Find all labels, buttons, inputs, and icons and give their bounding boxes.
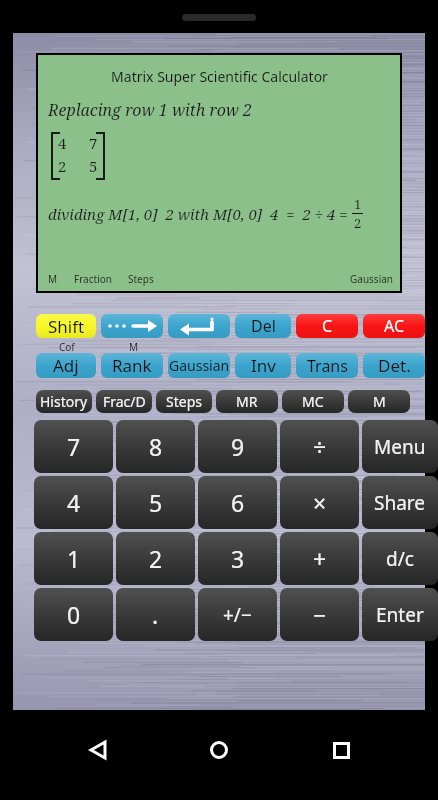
button[interactable]: Steps bbox=[156, 390, 212, 413]
button[interactable]: 2 bbox=[116, 532, 195, 585]
staticText: 6 bbox=[231, 487, 245, 518]
button[interactable]: MR bbox=[216, 390, 278, 413]
staticText: Inv bbox=[251, 354, 276, 377]
button[interactable]: +/− bbox=[198, 588, 277, 641]
staticText: Share bbox=[374, 490, 426, 516]
button[interactable]: 4 bbox=[34, 476, 113, 529]
button[interactable]: Frac/D bbox=[96, 390, 152, 413]
button[interactable]: × bbox=[280, 476, 359, 529]
staticText: Menu bbox=[374, 434, 426, 460]
staticText: Enter bbox=[376, 602, 424, 628]
button[interactable]: + bbox=[280, 532, 359, 585]
button[interactable]: 0 bbox=[34, 588, 113, 641]
staticText: MC bbox=[302, 392, 324, 411]
staticText: . bbox=[152, 599, 159, 630]
button[interactable]: 9 bbox=[198, 420, 277, 473]
staticText: 4 bbox=[67, 487, 81, 518]
button[interactable]: 7 bbox=[34, 420, 113, 473]
staticText: M bbox=[373, 392, 386, 411]
button[interactable]: 6 bbox=[198, 476, 277, 529]
button[interactable]: Back bbox=[74, 726, 122, 774]
button[interactable]: Home bbox=[195, 726, 243, 774]
button[interactable]: 1 bbox=[34, 532, 113, 585]
staticText: ÷ bbox=[313, 431, 327, 462]
button[interactable]: Inv bbox=[235, 353, 291, 378]
staticText: Gaussian bbox=[350, 272, 394, 286]
staticText: M bbox=[48, 272, 58, 286]
staticText: dividing M[1, 0] 2 with M[0, 0] 4 = 2 ÷ … bbox=[48, 204, 352, 224]
button[interactable]: Recent apps bbox=[317, 726, 365, 774]
button[interactable]: . bbox=[116, 588, 195, 641]
button[interactable] bbox=[101, 314, 163, 338]
button[interactable]: Gaussian bbox=[168, 353, 230, 378]
staticText: +/− bbox=[223, 602, 252, 628]
button[interactable]: Shift bbox=[36, 314, 96, 338]
button[interactable]: − bbox=[280, 588, 359, 641]
staticText: Det. bbox=[378, 354, 411, 377]
staticText: 1 bbox=[354, 195, 362, 213]
staticText: 3 bbox=[231, 543, 245, 574]
staticText: 5 bbox=[89, 156, 98, 176]
staticText: Rank bbox=[112, 354, 152, 377]
staticText: 2 bbox=[354, 214, 362, 232]
button[interactable]: History bbox=[36, 390, 92, 413]
button[interactable]: Enter bbox=[362, 588, 438, 641]
button[interactable]: MC bbox=[282, 390, 344, 413]
button[interactable]: Del bbox=[235, 314, 291, 338]
staticText: M bbox=[129, 340, 139, 354]
staticText: + bbox=[313, 543, 327, 574]
staticText: Matrix Super Scientific Calculator bbox=[111, 67, 328, 86]
button[interactable]: ÷ bbox=[280, 420, 359, 473]
staticText: Shift bbox=[48, 315, 85, 338]
staticText: 7 bbox=[89, 133, 98, 153]
button[interactable] bbox=[168, 314, 230, 338]
staticText: 9 bbox=[231, 431, 245, 462]
staticText: AC bbox=[384, 315, 405, 337]
staticText: Trans bbox=[307, 355, 348, 377]
staticText: 8 bbox=[149, 431, 163, 462]
button[interactable]: Adj bbox=[36, 353, 96, 378]
button[interactable]: AC bbox=[363, 314, 425, 338]
staticText: d/c bbox=[386, 546, 414, 572]
staticText: 5 bbox=[149, 487, 163, 518]
staticText: C bbox=[322, 315, 333, 337]
staticText: 0 bbox=[67, 599, 81, 630]
staticText: 7 bbox=[67, 431, 81, 462]
staticText: × bbox=[313, 487, 327, 518]
staticText: − bbox=[313, 599, 327, 630]
staticText: MR bbox=[236, 392, 258, 411]
staticText: Steps bbox=[128, 272, 154, 286]
staticText: Gaussian bbox=[169, 356, 230, 375]
staticText: Replacing row 1 with row 2 bbox=[48, 99, 253, 121]
staticText: Steps bbox=[166, 392, 202, 411]
staticText: Del bbox=[251, 315, 276, 337]
button[interactable]: 5 bbox=[116, 476, 195, 529]
staticText: 2 bbox=[149, 543, 163, 574]
staticText: Cof bbox=[59, 340, 75, 354]
button[interactable]: Menu bbox=[362, 420, 438, 473]
staticText: Fraction bbox=[74, 272, 112, 286]
staticText: History bbox=[40, 392, 88, 411]
staticText: 2 bbox=[58, 156, 67, 176]
button[interactable]: Rank bbox=[101, 353, 163, 378]
button[interactable]: Det. bbox=[363, 353, 425, 378]
button[interactable]: Trans bbox=[296, 353, 358, 378]
button[interactable]: M bbox=[348, 390, 410, 413]
button[interactable]: Share bbox=[362, 476, 438, 529]
button[interactable]: 3 bbox=[198, 532, 277, 585]
staticText: Frac/D bbox=[103, 392, 146, 411]
staticText: 1 bbox=[67, 543, 81, 574]
staticText: 4 bbox=[58, 133, 67, 153]
button[interactable]: 8 bbox=[116, 420, 195, 473]
button[interactable]: d/c bbox=[362, 532, 438, 585]
button[interactable]: C bbox=[296, 314, 358, 338]
staticText: Adj bbox=[53, 354, 79, 377]
